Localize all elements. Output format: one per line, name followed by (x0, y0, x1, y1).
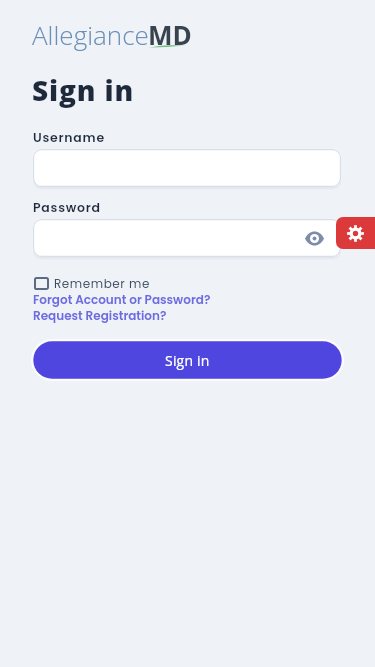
button[interactable]: Request Registration? (33, 307, 167, 324)
button[interactable] (33, 149, 341, 187)
button[interactable]: Show password (301, 225, 327, 251)
staticText: MD (148, 17, 192, 51)
staticText: Sign in (32, 71, 135, 109)
button[interactable] (33, 219, 341, 257)
button[interactable]: Allegiance (32, 17, 192, 51)
button[interactable]: Forgot Account or Password? (33, 291, 211, 308)
button[interactable]: Settings (336, 217, 375, 249)
button[interactable]: Sign in (31, 339, 344, 381)
staticText: Remember me (54, 275, 150, 289)
staticText: Allegiance (32, 17, 149, 51)
staticText: Password (33, 199, 101, 216)
staticText: Sign in (165, 351, 210, 370)
button[interactable]: Remember me (34, 276, 150, 290)
staticText: Username (33, 129, 105, 146)
